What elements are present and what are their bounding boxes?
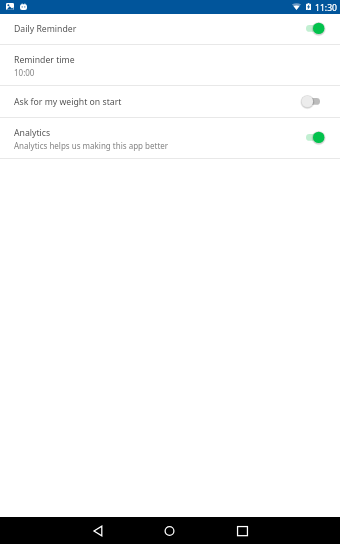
button[interactable]: Reminder time — [0, 45, 340, 85]
button[interactable]: Back — [86, 517, 109, 544]
staticText: Ask for my weight on start — [14, 96, 122, 108]
button[interactable]: Analytics — [0, 118, 340, 158]
button[interactable]: Switch off — [302, 92, 326, 112]
staticText: 11:30 — [315, 2, 337, 14]
button[interactable]: Home — [158, 517, 181, 544]
staticText: Analytics helps us making this app bette… — [14, 140, 169, 151]
staticText: Daily Reminder — [14, 23, 77, 35]
button[interactable]: Recent apps — [231, 517, 254, 544]
staticText: 10:00 — [14, 67, 35, 78]
button[interactable]: Switch on — [302, 19, 326, 39]
staticText: Reminder time — [14, 54, 75, 66]
button[interactable]: Daily Reminder — [0, 14, 340, 44]
staticText: Analytics — [14, 127, 51, 139]
button[interactable]: Ask for my weight on start — [0, 86, 340, 117]
button[interactable]: Switch on — [302, 128, 326, 148]
